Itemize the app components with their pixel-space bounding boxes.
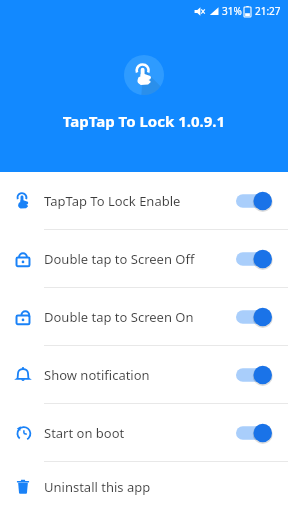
button[interactable]: TapTap To Lock Enable [0, 172, 288, 229]
staticText: Start on boot [44, 424, 236, 442]
button[interactable]: Show notification [0, 346, 288, 403]
staticText: TapTap To Lock Enable [44, 192, 236, 210]
staticText: 31% [222, 4, 242, 18]
staticText: Show notification [44, 366, 236, 384]
staticText: Uninstall this app [44, 478, 272, 496]
button[interactable]: Toggle [236, 422, 272, 444]
button[interactable]: Start on boot [0, 404, 288, 461]
button[interactable]: Toggle [236, 306, 272, 328]
staticText: Double tap to Screen On [44, 308, 236, 326]
button[interactable]: Toggle [236, 364, 272, 386]
button[interactable]: Double tap to Screen Off [0, 230, 288, 287]
button[interactable]: Toggle [236, 190, 272, 212]
button[interactable]: Toggle [236, 248, 272, 270]
button[interactable]: Uninstall this app [0, 462, 288, 512]
staticText: 21:27 [255, 4, 281, 18]
staticText: TapTap To Lock 1.0.9.1 [0, 111, 288, 131]
staticText: Double tap to Screen Off [44, 250, 236, 268]
button[interactable]: Double tap to Screen On [0, 288, 288, 345]
